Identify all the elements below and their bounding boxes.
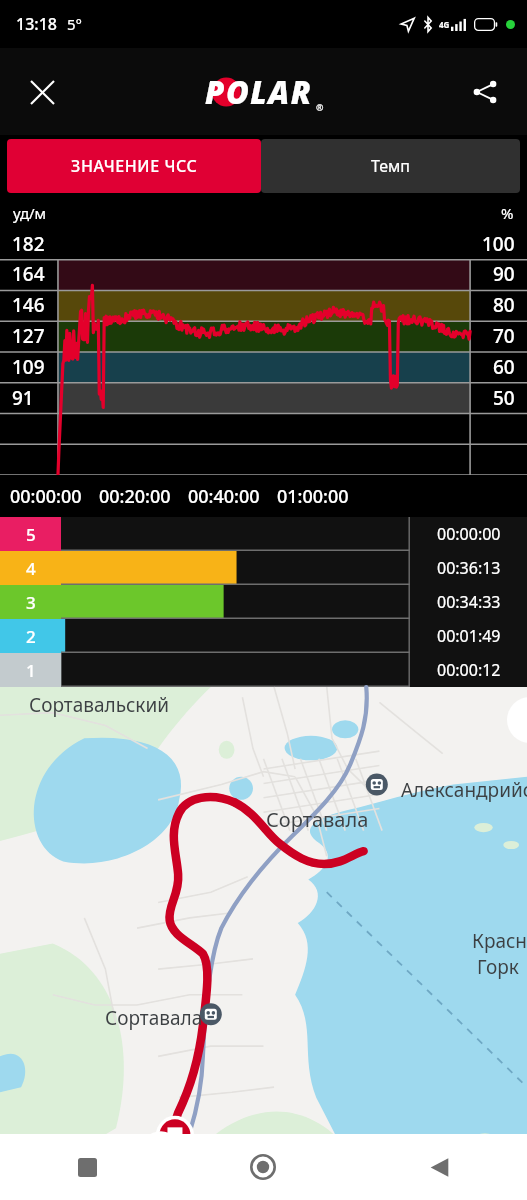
staticText: POLAR	[205, 71, 313, 113]
staticText: 127	[12, 323, 45, 349]
staticText: 60	[493, 354, 515, 380]
button[interactable]: Back	[351, 1134, 527, 1200]
staticText: 100	[482, 231, 515, 257]
staticText: %	[501, 203, 514, 223]
staticText: Сортавала	[105, 1005, 203, 1031]
staticText: уд/м	[13, 203, 47, 223]
button[interactable]: 5	[0, 517, 527, 551]
button[interactable]: ЗНАЧЕНИЕ ЧСС	[7, 139, 261, 193]
button[interactable]: Close	[16, 66, 68, 118]
staticText: 00:01:49	[437, 625, 501, 647]
staticText: ®	[316, 101, 324, 113]
button[interactable]: Map options	[507, 697, 527, 743]
staticText: Красн	[472, 928, 527, 954]
staticText: 00:20:00	[99, 484, 171, 509]
staticText: 90	[493, 261, 515, 287]
button[interactable]: Home	[175, 1134, 351, 1200]
staticText: 80	[493, 292, 515, 318]
staticText: 2	[26, 625, 36, 648]
button[interactable]: 3	[0, 585, 527, 619]
staticText: 01:00:00	[277, 484, 349, 509]
button[interactable]: Share	[459, 66, 511, 118]
button[interactable]: Темп	[261, 139, 520, 193]
staticText: 4G	[439, 19, 450, 30]
staticText: 182	[12, 231, 45, 257]
staticText: ЗНАЧЕНИЕ ЧСС	[71, 155, 198, 177]
staticText: Темп	[371, 155, 411, 177]
staticText: 00:40:00	[188, 484, 260, 509]
staticText: Сортавальский	[29, 692, 170, 718]
button[interactable]: 1	[0, 653, 527, 687]
button[interactable]: 4	[0, 551, 527, 585]
staticText: 109	[12, 354, 45, 380]
staticText: 00:36:13	[437, 557, 501, 579]
staticText: 1	[26, 659, 36, 682]
staticText: 5°	[67, 14, 83, 34]
staticText: 164	[12, 261, 45, 287]
staticText: 50	[493, 385, 515, 411]
staticText: Александрийск	[401, 777, 527, 803]
staticText: Горк	[477, 954, 519, 980]
staticText: Сортавала	[266, 806, 369, 833]
staticText: 3	[26, 591, 36, 614]
staticText: 00:00:00	[437, 523, 501, 545]
staticText: 13:18	[16, 13, 57, 35]
staticText: 70	[493, 323, 515, 349]
staticText: 4	[26, 557, 36, 580]
button[interactable]: 2	[0, 619, 527, 653]
staticText: 00:00:12	[437, 659, 501, 681]
staticText: 91	[12, 385, 34, 411]
button[interactable]: Recents	[0, 1134, 175, 1200]
staticText: 5	[26, 523, 36, 546]
staticText: 00:34:33	[437, 591, 501, 613]
staticText: 00:00:00	[10, 484, 82, 509]
staticText: 146	[12, 292, 45, 318]
